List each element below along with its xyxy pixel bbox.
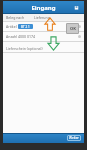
button[interactable]: Artikel: [3, 22, 84, 31]
staticText: Eingang: [31, 4, 56, 12]
staticText: BT 2 1: [21, 25, 30, 29]
staticText: Lieferung: [34, 15, 50, 20]
button[interactable]: Weiter: [67, 135, 81, 141]
staticText: Lieferschein (optional): [6, 46, 43, 51]
button[interactable]: Beleg nach: [6, 15, 25, 20]
button[interactable]: Lieferschein (optional): [3, 44, 84, 52]
staticText: 4000 0174: [18, 34, 35, 39]
staticText: Beleg nach: [6, 15, 25, 20]
staticText: Anzahl: [6, 34, 18, 39]
staticText: Weiter: [69, 136, 79, 140]
staticText: OK: [70, 26, 76, 31]
button[interactable]: Delete: [72, 3, 81, 12]
button[interactable]: Anzahl: [3, 32, 84, 41]
button[interactable]: Lieferung: [34, 15, 50, 20]
button[interactable]: OK: [66, 23, 79, 34]
staticText: Artikel: [6, 24, 18, 29]
